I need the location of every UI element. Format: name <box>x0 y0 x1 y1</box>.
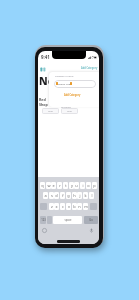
staticText: m <box>84 204 88 209</box>
button[interactable]: a <box>43 192 48 199</box>
staticText: e <box>52 183 55 188</box>
staticText: r <box>59 183 61 188</box>
staticText: n <box>78 204 81 209</box>
staticText: q <box>41 183 44 188</box>
staticText: s <box>51 193 53 198</box>
staticText: k <box>84 193 87 198</box>
button[interactable]: s <box>49 192 54 199</box>
staticText: x <box>55 204 58 209</box>
button[interactable]: b <box>72 203 77 210</box>
staticText: Go <box>89 218 93 222</box>
staticText: b <box>73 204 76 209</box>
staticText: o <box>87 183 90 188</box>
staticText: Shop <box>39 102 48 107</box>
button[interactable]: p <box>92 182 97 189</box>
button[interactable]: i <box>80 182 85 189</box>
staticText: Groceries <box>61 106 71 109</box>
staticText: w <box>47 183 51 188</box>
staticText: l <box>91 193 93 198</box>
staticText: t <box>65 183 67 188</box>
staticText: Sports Trip <box>58 82 71 85</box>
button[interactable]: o <box>86 182 91 189</box>
button[interactable]: 123 <box>40 216 46 224</box>
button[interactable]: space <box>53 216 82 224</box>
button[interactable]: w <box>46 182 51 189</box>
staticText: 9:41 <box>41 54 50 60</box>
button[interactable]: n <box>77 203 82 210</box>
staticText: p <box>93 183 96 188</box>
button[interactable]: x <box>54 203 59 210</box>
button[interactable]: z <box>49 203 54 210</box>
staticText: i <box>82 183 84 188</box>
button[interactable]: Go <box>84 216 98 224</box>
button[interactable]: e <box>51 182 56 189</box>
button[interactable]: j <box>77 192 82 199</box>
staticText: note <box>48 110 53 113</box>
button[interactable]: Emoji <box>42 228 47 233</box>
button[interactable]: l <box>89 192 94 199</box>
staticText: Add Category <box>81 66 98 69</box>
staticText: d <box>55 193 58 198</box>
button[interactable]: q <box>40 182 45 189</box>
staticText: space <box>64 218 72 222</box>
staticText: note <box>67 110 72 113</box>
button[interactable]: u <box>74 182 79 189</box>
button[interactable]: Sports Trip <box>54 80 96 88</box>
staticText: v <box>68 204 70 209</box>
button[interactable]: k <box>83 192 88 199</box>
staticText: a <box>44 193 47 198</box>
staticText: f <box>62 193 64 198</box>
staticText: Add Category <box>64 93 81 96</box>
staticText: j <box>79 193 81 198</box>
button[interactable]: y <box>69 182 74 189</box>
staticText: z <box>51 204 53 209</box>
button[interactable]: r <box>57 182 62 189</box>
button[interactable]: Add Category <box>81 66 98 69</box>
staticText: g <box>67 193 70 198</box>
button[interactable]: c <box>60 203 65 210</box>
staticText: Red <box>39 97 46 102</box>
button[interactable]: f <box>60 192 65 199</box>
staticText: c <box>62 204 64 209</box>
staticText: Notes <box>39 74 71 88</box>
button[interactable]: t <box>63 182 68 189</box>
staticText: y <box>71 183 73 188</box>
staticText: Category Name <box>55 74 74 77</box>
button[interactable]: Add Category <box>64 93 81 96</box>
button[interactable]: m <box>83 203 88 210</box>
button[interactable]: g <box>66 192 71 199</box>
button[interactable]: note <box>61 108 78 114</box>
button[interactable]: note <box>42 108 59 114</box>
button[interactable]: d <box>54 192 59 199</box>
staticText: h <box>73 193 76 198</box>
staticText: 123 <box>41 218 46 222</box>
button[interactable]: v <box>66 203 71 210</box>
staticText: u <box>75 183 78 188</box>
button[interactable]: Microphone <box>89 228 94 233</box>
button[interactable]: Menu <box>40 67 46 72</box>
button[interactable]: h <box>72 192 77 199</box>
